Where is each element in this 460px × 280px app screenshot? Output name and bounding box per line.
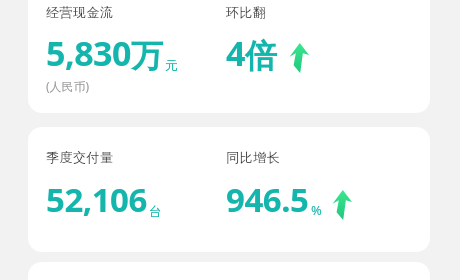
staticText: 同比增长 — [226, 149, 280, 165]
staticText: 52,106 — [46, 177, 147, 222]
staticText: 倍 — [245, 36, 277, 76]
staticText: 台 — [149, 203, 162, 219]
staticText: % — [311, 201, 322, 219]
staticText: 经营现金流 — [46, 4, 114, 20]
staticText: 万 — [131, 36, 163, 76]
staticText: 4 — [226, 30, 245, 76]
button[interactable]: 经营现金流 — [28, 0, 430, 113]
staticText: 季度交付量 — [46, 149, 114, 165]
other: Increase — [287, 43, 309, 73]
staticText: (人民币) — [46, 78, 90, 94]
staticText: 5,830 — [46, 30, 131, 76]
staticText: 环比翻 — [226, 4, 267, 20]
button[interactable]: 季度交付量 — [28, 127, 430, 252]
staticText: 元 — [165, 57, 178, 73]
staticText: 946.5 — [226, 177, 309, 222]
other: Increase — [330, 190, 352, 220]
